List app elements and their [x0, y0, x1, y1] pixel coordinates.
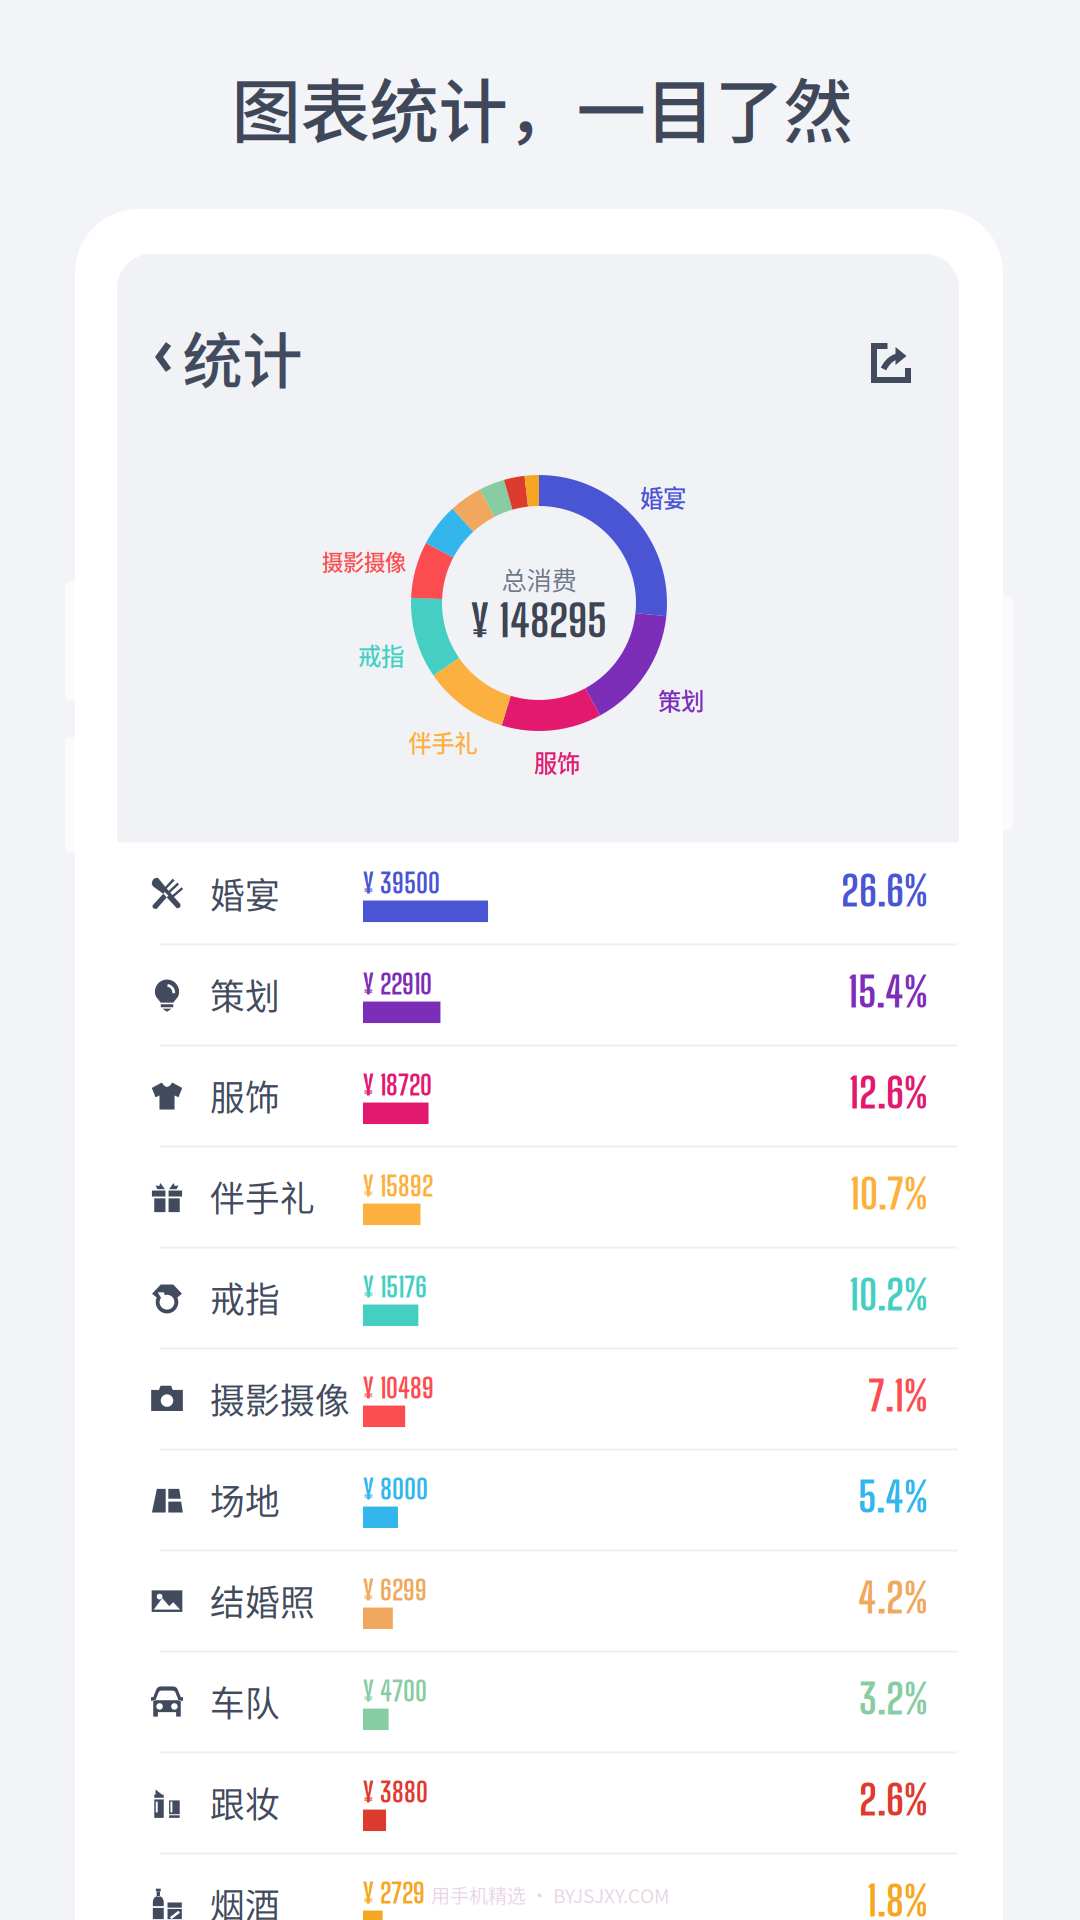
staticText: 5.4%	[858, 1472, 928, 1521]
staticText: 场地	[210, 1474, 280, 1525]
staticText: 4.2%	[858, 1573, 928, 1622]
staticText: 图表统计，一目了然	[231, 57, 852, 157]
staticText: 戒指	[358, 638, 404, 672]
button[interactable]: 服饰	[117, 1044, 959, 1145]
staticText: ¥ 148295	[471, 593, 607, 647]
button[interactable]: 跟妆	[117, 1751, 959, 1852]
button[interactable]: 统计	[152, 318, 317, 398]
staticText: 15.4%	[848, 967, 928, 1016]
button[interactable]: 策划	[117, 943, 959, 1044]
staticText: ¥ 10489	[363, 1372, 434, 1404]
staticText: 总消费	[501, 561, 576, 597]
staticText: ¥ 39500	[363, 867, 440, 899]
button[interactable]: 伴手礼	[117, 1145, 959, 1246]
staticText: 26.6%	[841, 866, 928, 915]
staticText: 12.6%	[849, 1068, 928, 1117]
staticText: 婚宴	[640, 480, 686, 514]
staticText: 1.8%	[867, 1876, 928, 1920]
staticText: 10.2%	[849, 1270, 928, 1319]
staticText: 摄影摄像	[322, 546, 406, 576]
staticText: 3.2%	[859, 1674, 928, 1723]
button[interactable]: 结婚照	[117, 1549, 959, 1650]
staticText: ¥ 6299	[363, 1574, 427, 1606]
staticText: 服饰	[534, 745, 580, 779]
staticText: 烟酒	[210, 1878, 280, 1920]
button[interactable]: 车队	[117, 1650, 959, 1751]
staticText: ¥ 2729	[363, 1877, 425, 1909]
staticText: 戒指	[210, 1272, 280, 1323]
staticText: ¥ 3880	[363, 1776, 428, 1808]
staticText: ¥ 4700	[363, 1675, 427, 1707]
staticText: ¥ 22910	[363, 968, 432, 1000]
staticText: ¥ 15176	[363, 1271, 427, 1303]
button[interactable]: 烟酒	[117, 1852, 959, 1920]
staticText: 7.1%	[868, 1371, 928, 1420]
staticText: 婚宴	[210, 868, 280, 919]
staticText: ¥ 8000	[363, 1473, 428, 1505]
staticText: 用手机精选 · BYJSJXY.COM	[431, 1881, 669, 1909]
button[interactable]: 婚宴	[117, 842, 959, 943]
staticText: 摄影摄像	[210, 1373, 350, 1424]
staticText: 10.7%	[850, 1169, 928, 1218]
staticText: 策划	[210, 969, 280, 1020]
staticText: 2.6%	[859, 1775, 928, 1824]
staticText: 伴手礼	[408, 725, 477, 759]
staticText: 服饰	[210, 1070, 280, 1121]
button[interactable]: 场地	[117, 1448, 959, 1549]
button[interactable]: 戒指	[117, 1246, 959, 1347]
staticText: 统计	[182, 314, 302, 400]
staticText: ¥ 15892	[363, 1170, 433, 1202]
button[interactable]: 摄影摄像	[117, 1347, 959, 1448]
staticText: 跟妆	[210, 1777, 280, 1828]
staticText: 车队	[210, 1676, 280, 1727]
button[interactable]: Share	[853, 325, 929, 401]
staticText: 策划	[658, 683, 704, 717]
staticText: 伴手礼	[210, 1171, 315, 1222]
staticText: ¥ 18720	[363, 1069, 432, 1101]
staticText: 结婚照	[210, 1575, 315, 1626]
